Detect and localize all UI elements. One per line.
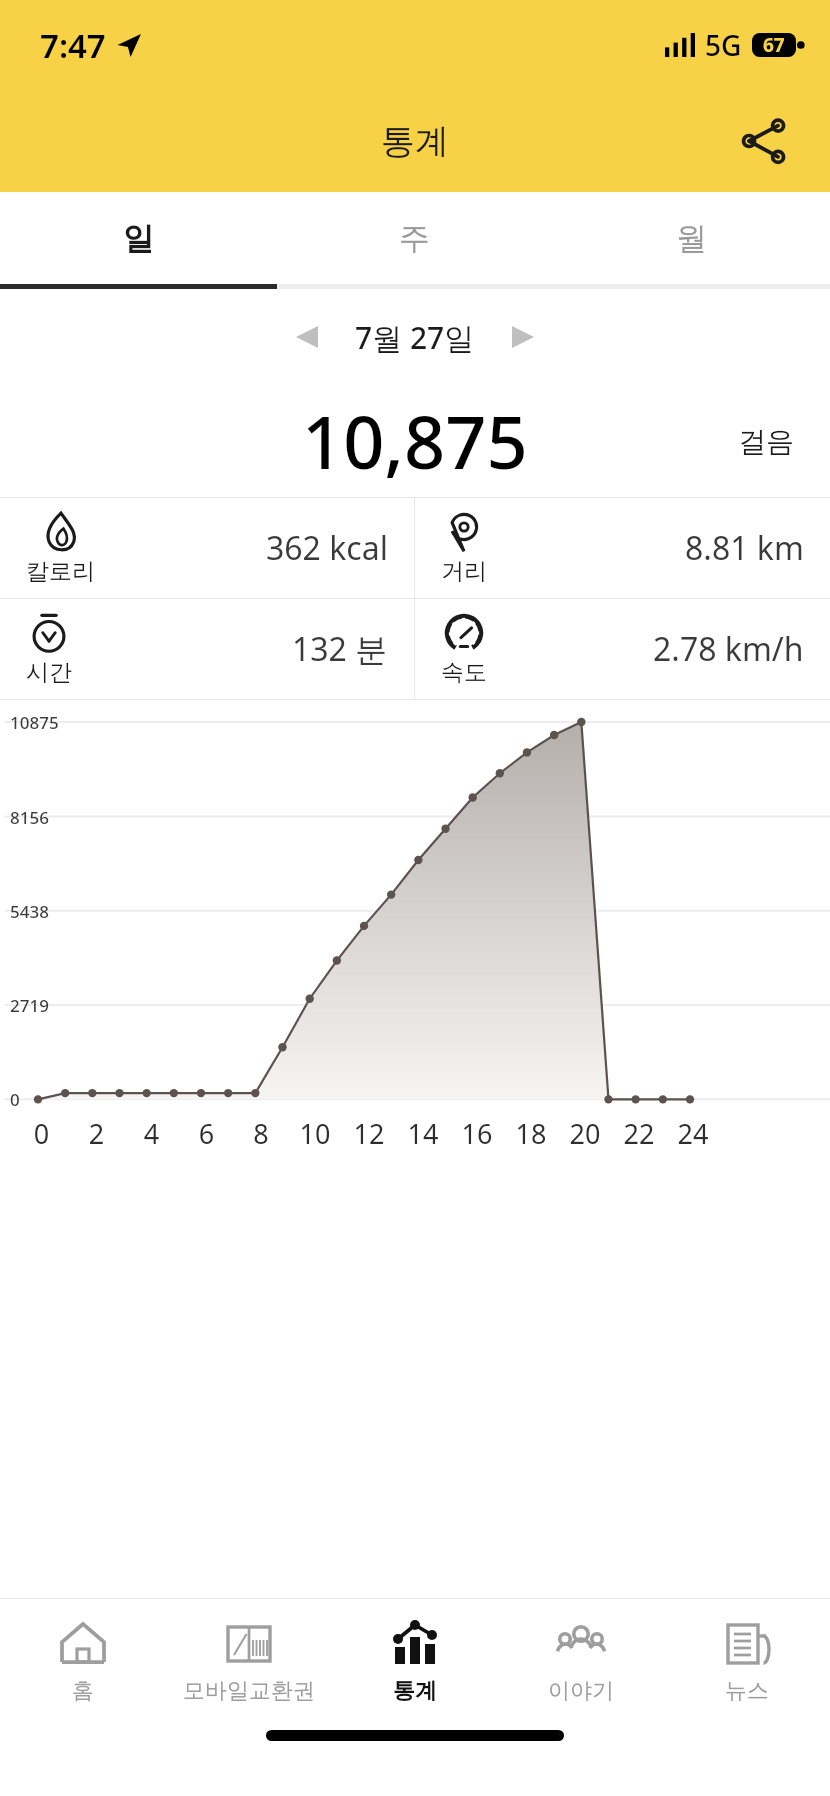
- button[interactable]: 뉴스: [664, 1599, 830, 1724]
- staticText: 132 분: [292, 627, 388, 671]
- staticText: 12: [342, 1115, 396, 1152]
- staticText: 14: [396, 1115, 450, 1152]
- staticText: 8156: [10, 806, 49, 829]
- staticText: 거리: [441, 557, 487, 586]
- button[interactable]: 이야기: [498, 1599, 664, 1724]
- staticText: 칼로리: [26, 557, 95, 586]
- staticText: 2719: [10, 994, 49, 1017]
- staticText: 걸음: [738, 424, 794, 459]
- button[interactable]: 속도: [415, 599, 830, 699]
- staticText: 8: [234, 1115, 288, 1152]
- staticText: 주: [399, 219, 430, 258]
- button[interactable]: 주: [276, 192, 553, 284]
- button[interactable]: 일: [0, 192, 276, 284]
- staticText: 22: [612, 1115, 666, 1152]
- staticText: 5438: [10, 900, 49, 923]
- staticText: 속도: [441, 658, 487, 687]
- staticText: 10,875: [302, 392, 528, 490]
- staticText: 362 kcal: [266, 526, 388, 570]
- button[interactable]: 공유: [726, 103, 802, 179]
- button[interactable]: 통계: [332, 1599, 498, 1724]
- staticText: 일: [123, 219, 154, 258]
- staticText: 모바일교환권: [183, 1677, 315, 1705]
- staticText: 7월 27일: [355, 317, 475, 358]
- staticText: 이야기: [548, 1677, 614, 1705]
- staticText: 6: [179, 1115, 234, 1152]
- button[interactable]: 칼로리: [0, 498, 414, 598]
- button[interactable]: 거리: [415, 498, 830, 598]
- staticText: 10: [288, 1115, 342, 1152]
- staticText: 0: [10, 1088, 20, 1111]
- staticText: 67: [763, 32, 785, 58]
- staticText: 20: [558, 1115, 612, 1152]
- staticText: 2.78 km/h: [653, 627, 804, 671]
- staticText: 7:47: [40, 23, 106, 68]
- staticText: 24: [666, 1115, 720, 1152]
- staticText: 10875: [10, 711, 59, 734]
- button[interactable]: 월: [553, 192, 830, 284]
- staticText: 8.81 km: [685, 526, 804, 570]
- staticText: 월: [676, 219, 707, 258]
- staticText: 시간: [26, 658, 72, 687]
- staticText: 홈: [72, 1677, 94, 1705]
- staticText: 4: [124, 1115, 179, 1152]
- staticText: 통계: [393, 1677, 437, 1705]
- staticText: 16: [450, 1115, 504, 1152]
- staticText: 2: [69, 1115, 124, 1152]
- button[interactable]: 다음 날짜: [493, 307, 553, 367]
- button[interactable]: 모바일교환권: [166, 1599, 332, 1724]
- button[interactable]: 홈: [0, 1599, 166, 1724]
- staticText: 뉴스: [725, 1677, 769, 1705]
- button[interactable]: 시간: [0, 599, 414, 699]
- staticText: 통계: [381, 120, 449, 163]
- staticText: 18: [504, 1115, 558, 1152]
- button[interactable]: 이전 날짜: [277, 307, 337, 367]
- staticText: 5G: [705, 26, 742, 64]
- staticText: 0: [14, 1115, 69, 1152]
